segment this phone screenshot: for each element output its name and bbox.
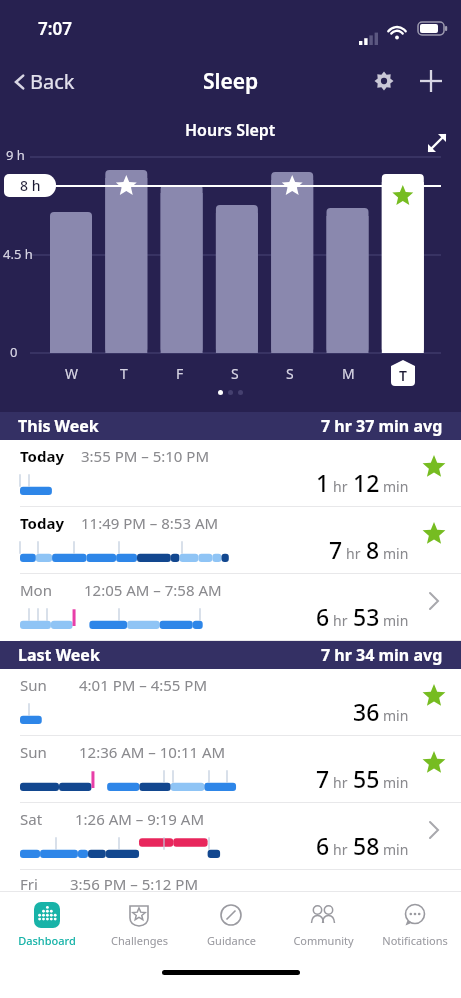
button[interactable]: Sun (0, 736, 461, 803)
staticText: 4.5 h (3, 245, 33, 263)
staticText: min (383, 611, 409, 630)
staticText: 36 (353, 696, 380, 727)
staticText: 12 (353, 467, 380, 498)
staticText: 6 (316, 601, 330, 632)
staticText: 58 (353, 830, 380, 861)
staticText: 7:07 (38, 17, 72, 40)
staticText: This Week (18, 415, 99, 437)
button[interactable]: Sat (0, 803, 461, 870)
staticText: Guidance (207, 933, 256, 948)
button[interactable]: Back (0, 62, 83, 101)
staticText: hr (333, 477, 348, 496)
staticText: Mon (20, 580, 52, 600)
staticText: M (342, 364, 355, 383)
staticText: Hours Slept (185, 119, 276, 141)
staticText: 3:56 PM – 5:12 PM (70, 874, 198, 891)
button[interactable]: Notifications (369, 892, 461, 964)
button[interactable]: Dashboard (0, 892, 93, 964)
staticText: min (383, 477, 409, 496)
button[interactable]: Today (0, 440, 461, 507)
staticText: Sun (20, 742, 47, 762)
staticText: F (176, 364, 184, 383)
staticText: 8 (366, 534, 380, 565)
staticText: T (399, 366, 407, 385)
button[interactable]: Sun (0, 669, 461, 736)
staticText: Last Week (18, 644, 100, 666)
staticText: min (383, 544, 409, 563)
staticText: 1 (316, 467, 330, 498)
staticText: hr (333, 840, 348, 859)
staticText: 8 h (20, 176, 41, 195)
staticText: min (383, 840, 409, 859)
staticText: 0 (10, 343, 18, 361)
staticText: 3:55 PM – 5:10 PM (81, 446, 209, 466)
staticText: Community (293, 933, 354, 948)
staticText: 7 (329, 534, 343, 565)
staticText: min (383, 773, 409, 792)
staticText: hr (333, 611, 348, 630)
staticText: Back (30, 68, 75, 95)
staticText: W (65, 364, 79, 383)
staticText: S (231, 364, 239, 383)
staticText: 12:36 AM – 10:11 AM (79, 742, 226, 762)
staticText: 7 hr 34 min avg (321, 644, 443, 666)
button[interactable]: Community (277, 892, 369, 964)
staticText: Notifications (382, 933, 448, 948)
button[interactable]: Mon (0, 574, 461, 641)
button[interactable]: Expand chart (420, 126, 454, 160)
staticText: Dashboard (18, 933, 76, 948)
staticText: 6 (316, 830, 330, 861)
staticText: hr (333, 773, 348, 792)
staticText: Sleep (203, 67, 259, 96)
staticText: 53 (353, 601, 380, 632)
staticText: 7 hr 37 min avg (321, 415, 443, 437)
staticText: 11:49 PM – 8:53 AM (81, 513, 219, 533)
staticText: 12:05 AM – 7:58 AM (84, 580, 222, 600)
staticText: Fri (20, 874, 38, 891)
staticText: S (286, 364, 294, 383)
staticText: T (120, 364, 128, 383)
button[interactable]: Settings (366, 63, 402, 99)
staticText: 55 (353, 763, 380, 794)
staticText: 9 h (6, 146, 25, 164)
staticText: Sun (20, 675, 47, 695)
staticText: 1:26 AM – 9:19 AM (75, 809, 205, 829)
button[interactable]: Guidance (185, 892, 277, 964)
staticText: Today (20, 513, 65, 533)
button[interactable]: Add (413, 63, 449, 99)
button[interactable]: Today (0, 507, 461, 574)
button[interactable]: Fri (0, 870, 461, 891)
staticText: 7 (316, 763, 330, 794)
staticText: Challenges (111, 933, 168, 948)
staticText: Sat (20, 809, 43, 829)
button[interactable]: Challenges (93, 892, 185, 964)
staticText: 4:01 PM – 4:55 PM (79, 675, 207, 695)
staticText: Today (20, 446, 65, 466)
staticText: min (383, 706, 409, 725)
staticText: hr (346, 544, 361, 563)
